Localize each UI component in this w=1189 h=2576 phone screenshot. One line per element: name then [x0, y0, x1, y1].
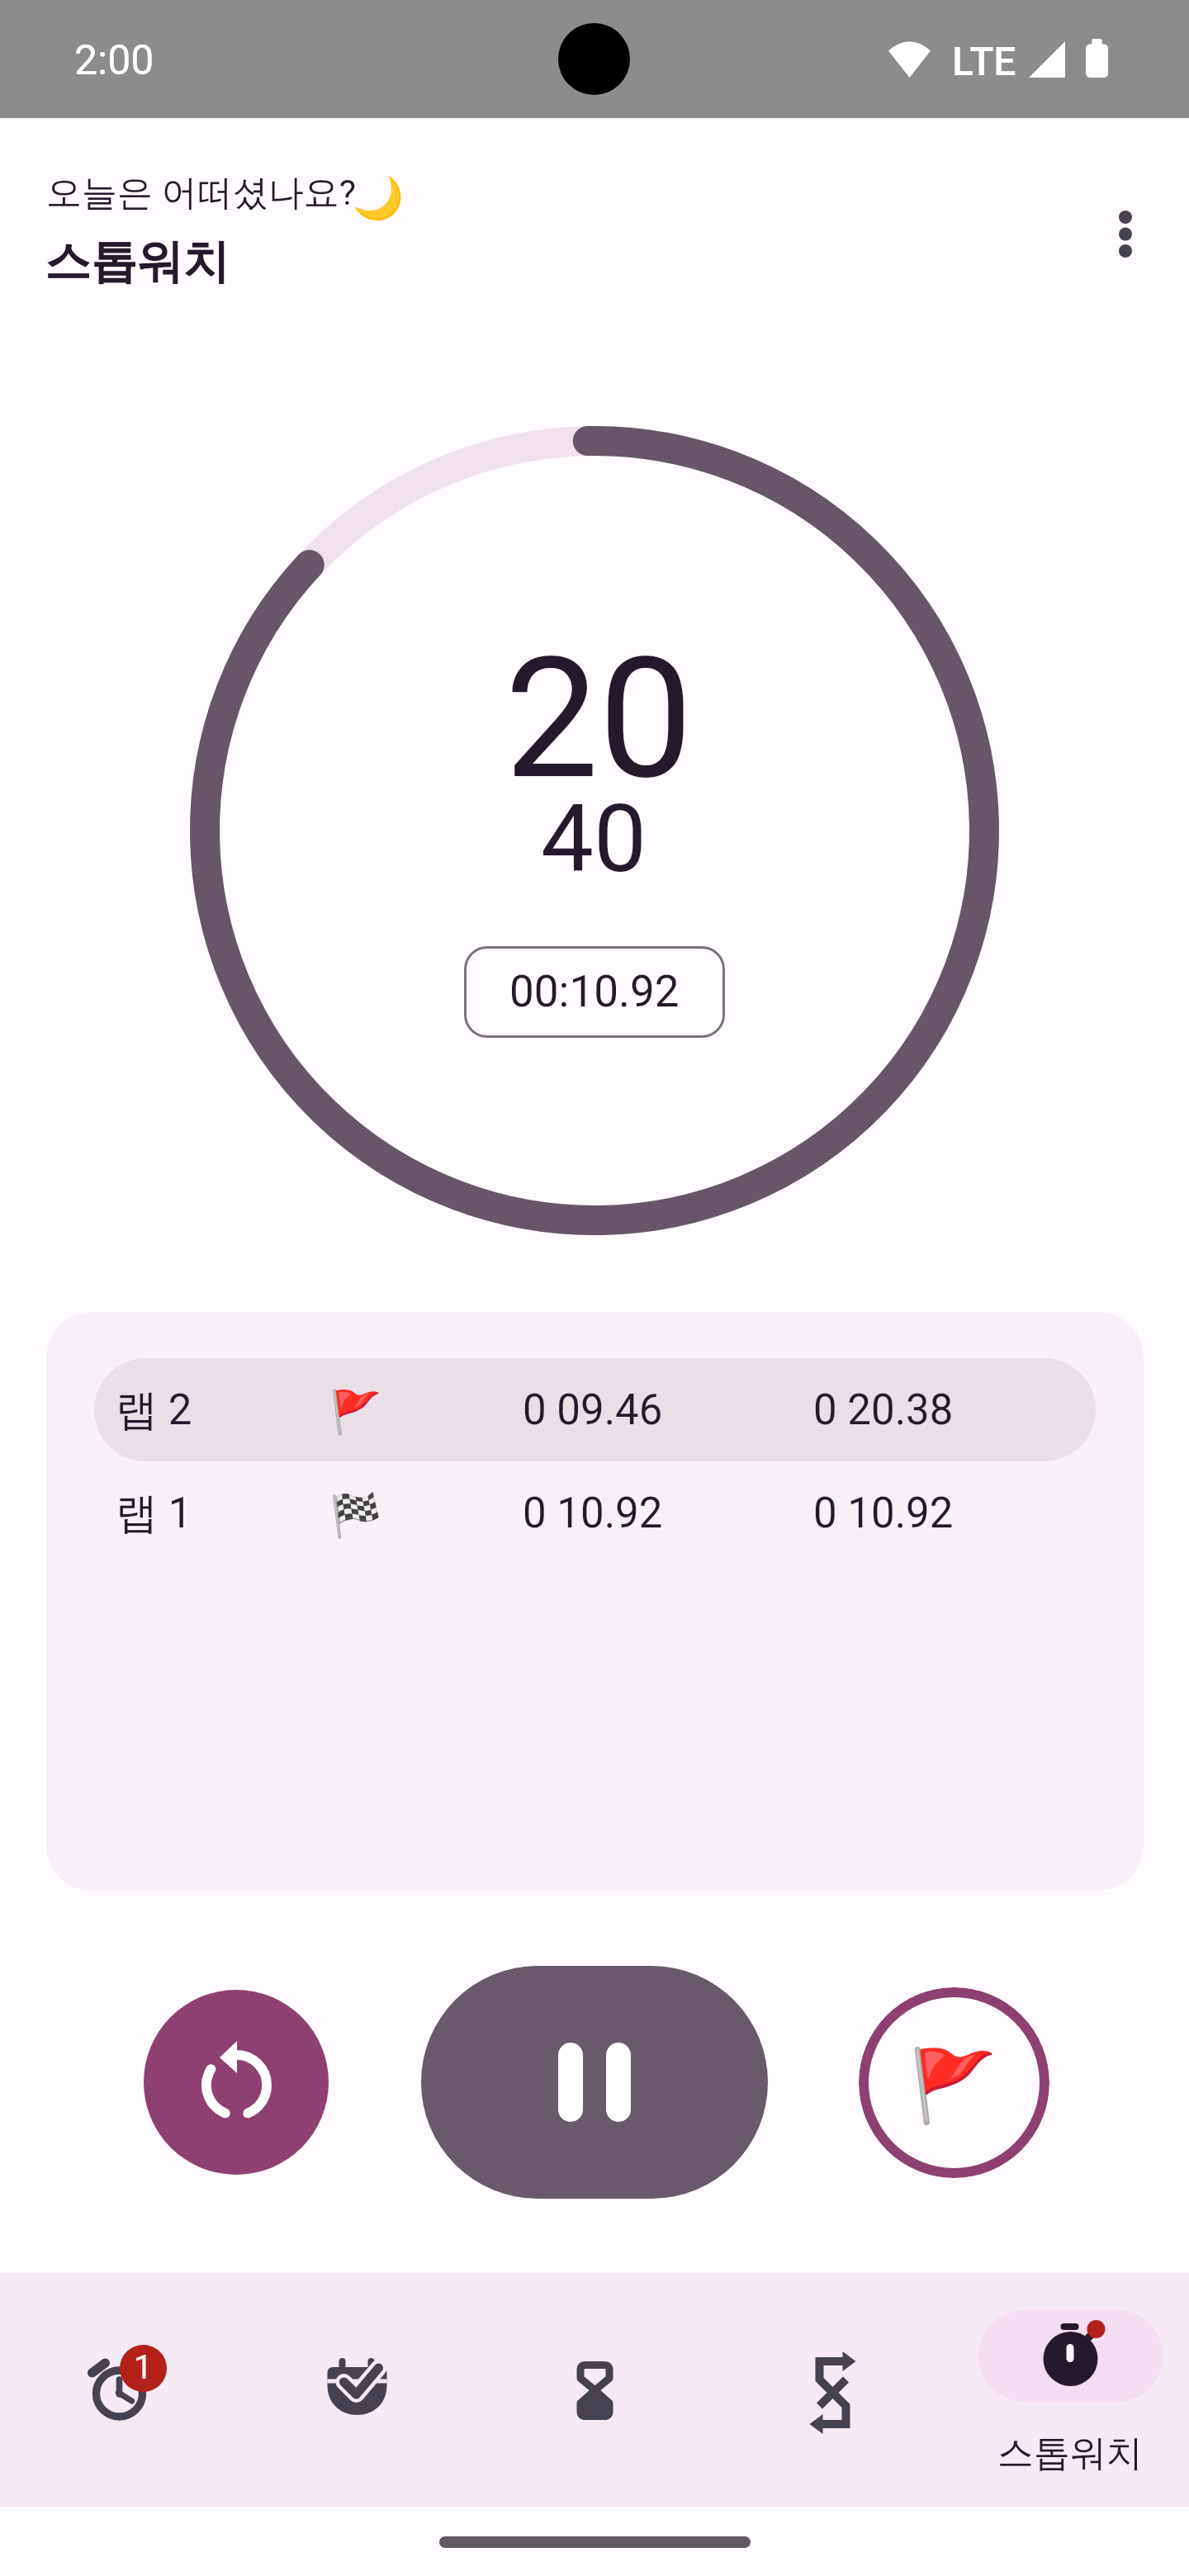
staticText: 🚩: [909, 2044, 998, 2128]
staticText: 🚩: [329, 1388, 382, 1437]
staticText: 40: [541, 784, 647, 894]
button[interactable]: 랩 2: [94, 1358, 1096, 1461]
staticText: 랩 2: [116, 1384, 192, 1437]
staticText: LTE: [952, 38, 1016, 84]
button[interactable]: Timer: [476, 2273, 713, 2402]
staticText: 0 10.92: [523, 1489, 663, 1538]
staticText: 20: [504, 621, 694, 817]
staticText: 🌙: [353, 174, 405, 223]
staticText: 🏁: [329, 1491, 382, 1541]
button[interactable]: More options: [1084, 192, 1167, 275]
staticText: 스톱워치: [45, 233, 230, 291]
button[interactable]: Lap: [859, 1987, 1049, 2178]
staticText: 스톱워치: [997, 2431, 1143, 2476]
button[interactable]: Alarm: [0, 2273, 238, 2402]
staticText: 0 10.92: [813, 1489, 954, 1538]
button[interactable]: Stopwatch: [951, 2273, 1189, 2476]
staticText: 1: [134, 2348, 153, 2387]
staticText: 0 20.38: [813, 1385, 954, 1435]
staticText: 0 09.46: [523, 1385, 663, 1435]
staticText: 2:00: [74, 36, 154, 85]
button[interactable]: Pause: [421, 1966, 768, 2199]
button[interactable]: Schedule: [238, 2273, 476, 2402]
staticText: 오늘은 어떠셨나요?: [46, 171, 356, 215]
staticText: 00:10.92: [509, 966, 680, 1017]
button[interactable]: Interval timer: [713, 2273, 951, 2402]
button[interactable]: Reset: [144, 1990, 329, 2175]
staticText: 랩 1: [116, 1487, 192, 1540]
button[interactable]: 랩 1: [94, 1461, 1096, 1565]
